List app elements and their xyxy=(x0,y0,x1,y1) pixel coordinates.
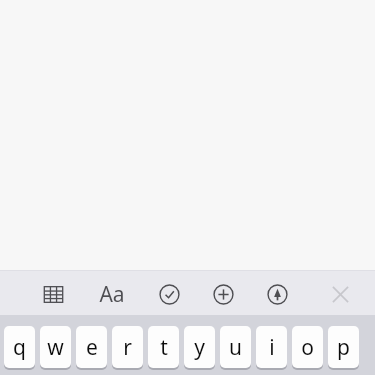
button[interactable]: e xyxy=(76,326,107,368)
button[interactable]: Markup xyxy=(256,273,298,315)
button[interactable]: Checklist xyxy=(148,273,190,315)
staticText: i xyxy=(269,333,275,362)
button[interactable]: y xyxy=(184,326,215,368)
staticText: y xyxy=(194,333,205,362)
staticText: Aa xyxy=(99,280,125,309)
button[interactable]: Insert table xyxy=(32,273,74,315)
button[interactable]: o xyxy=(292,326,323,368)
button[interactable]: Add attachment xyxy=(202,273,244,315)
staticText: w xyxy=(47,333,64,362)
button[interactable]: u xyxy=(220,326,251,368)
button[interactable]: w xyxy=(40,326,71,368)
button[interactable]: Text formatting xyxy=(91,273,133,315)
staticText: e xyxy=(86,333,98,362)
staticText: t xyxy=(160,333,168,362)
button[interactable]: t xyxy=(148,326,179,368)
staticText: q xyxy=(13,333,26,362)
button[interactable]: r xyxy=(112,326,143,368)
button[interactable]: Hide keyboard xyxy=(319,273,361,315)
staticText: r xyxy=(123,333,132,362)
staticText: o xyxy=(301,333,314,362)
button[interactable]: q xyxy=(4,326,35,368)
button[interactable]: i xyxy=(256,326,287,368)
staticText: p xyxy=(337,333,350,362)
staticText: u xyxy=(229,333,242,362)
button[interactable]: p xyxy=(328,326,359,368)
